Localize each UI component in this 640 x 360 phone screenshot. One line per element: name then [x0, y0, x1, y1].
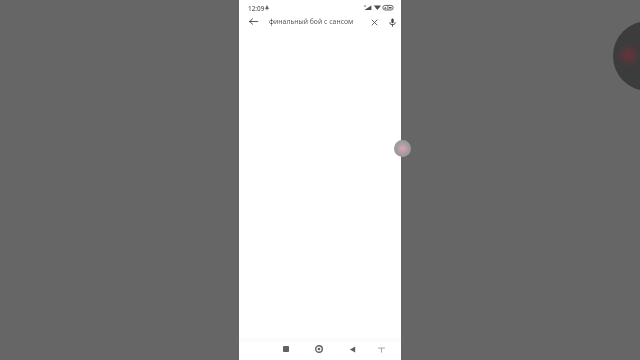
button[interactable]: Back [346, 343, 358, 355]
staticText: 12:09 [248, 4, 265, 13]
button[interactable]: Recent apps [280, 343, 292, 355]
button[interactable]: Clear query [366, 14, 382, 30]
button[interactable]: Screen recorder [394, 140, 411, 157]
button[interactable]: Hide keyboard [375, 343, 387, 355]
button[interactable]: финальный бой с сансом [269, 13, 366, 30]
button[interactable]: Home [313, 343, 325, 355]
button[interactable]: Voice search [384, 14, 400, 30]
button[interactable]: Back [245, 13, 262, 30]
staticText: финальный бой с сансом [269, 17, 354, 26]
